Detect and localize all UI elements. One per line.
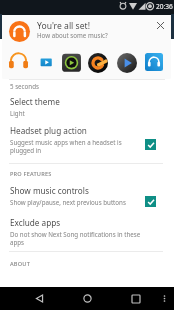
staticText: PRO FEATURES (10, 170, 52, 178)
staticText: Light (10, 109, 25, 117)
button[interactable]: You're all set! (2, 15, 171, 79)
button[interactable]: Music player app (61, 52, 82, 73)
button[interactable]: Player app (117, 53, 137, 73)
staticText: Do not show Next Song notifications in t… (10, 230, 141, 238)
staticText: How about some music? (37, 31, 108, 39)
staticText: Headset plug action (10, 125, 87, 136)
staticText: Show play/pause, next previous buttons (10, 198, 126, 206)
button[interactable]: Home (75, 287, 99, 310)
staticText: plugged in (10, 146, 42, 154)
button[interactable]: Select theme (0, 94, 174, 116)
button[interactable]: More options (152, 287, 174, 310)
staticText: Show music controls (10, 185, 89, 196)
staticText: Select theme (10, 96, 60, 107)
staticText: Suggest music apps when a headset is (10, 138, 122, 146)
button[interactable]: 5 seconds (0, 80, 174, 91)
staticText: 5 seconds (10, 82, 39, 90)
button[interactable]: Exclude apps (0, 215, 174, 245)
button[interactable]: Dismiss (153, 18, 168, 33)
button[interactable]: Toggle Headset plug action (145, 139, 156, 150)
button[interactable]: Recent apps (124, 287, 148, 310)
button[interactable]: Headset app (145, 53, 163, 71)
button[interactable]: Back (27, 287, 51, 310)
button[interactable]: Toggle Show music controls (145, 196, 156, 207)
button[interactable]: Music app (88, 53, 108, 73)
button[interactable]: Video player (37, 53, 55, 71)
button[interactable]: Play Music (9, 52, 28, 71)
staticText: 20:36 (156, 2, 173, 11)
staticText: You're all set! (37, 20, 90, 32)
staticText: Exclude apps (10, 217, 61, 228)
button[interactable]: Show music controls (0, 183, 174, 205)
staticText: ABOUT (10, 260, 30, 268)
staticText: apps (10, 238, 25, 246)
button[interactable]: Headset plug action (0, 123, 174, 153)
